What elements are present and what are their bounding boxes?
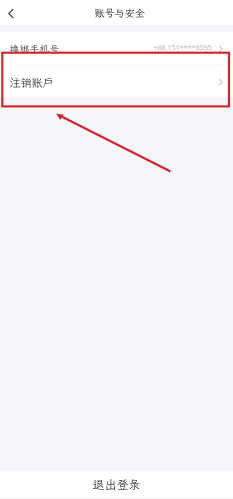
button[interactable]: Back — [0, 0, 21, 25]
staticText: 换绑手机号 — [9, 43, 59, 55]
staticText: 账号与安全 — [94, 6, 144, 20]
button[interactable]: 换绑手机号 — [0, 32, 233, 64]
staticText: 退出登录 — [92, 477, 140, 492]
button[interactable]: 注销账户 — [0, 65, 233, 97]
staticText: 注销账户 — [9, 75, 53, 90]
button[interactable]: 退出登录 — [0, 470, 233, 497]
staticText: +86 151****8595 — [154, 42, 212, 52]
